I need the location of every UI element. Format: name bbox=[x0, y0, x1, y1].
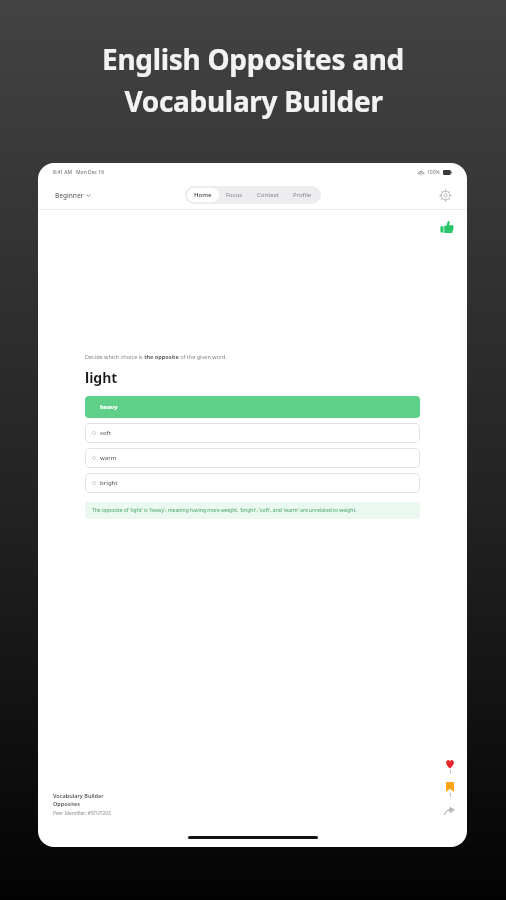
button[interactable]: warm bbox=[85, 448, 420, 468]
button[interactable]: Settings bbox=[439, 189, 452, 202]
staticText: The opposite of 'light' is 'heavy', mean… bbox=[92, 507, 357, 514]
button[interactable]: bright bbox=[85, 473, 420, 493]
staticText: Home bbox=[194, 191, 212, 199]
staticText: Peer Identifier: #STUT203 bbox=[53, 810, 111, 817]
staticText: Profile bbox=[293, 191, 312, 199]
staticText: Focus bbox=[226, 191, 243, 199]
staticText: Decide which choice is the opposite of t… bbox=[85, 353, 227, 360]
button[interactable]: Favorite bbox=[443, 757, 457, 777]
button[interactable]: Beginner bbox=[53, 189, 93, 202]
staticText: heavy bbox=[100, 403, 118, 411]
button[interactable]: Share bbox=[442, 804, 457, 819]
staticText: 1 bbox=[449, 792, 452, 798]
button[interactable]: Home bbox=[187, 188, 219, 202]
button[interactable]: Bookmark bbox=[444, 780, 456, 800]
staticText: 100% bbox=[427, 169, 440, 176]
staticText: Vocabulary Builder bbox=[53, 792, 104, 799]
staticText: 1 bbox=[449, 769, 452, 775]
staticText: Beginner bbox=[55, 191, 84, 200]
staticText: Context bbox=[257, 191, 279, 199]
staticText: Vocabulary Builder bbox=[124, 82, 383, 120]
button[interactable]: Context bbox=[250, 188, 286, 202]
staticText: 8:41 AM Mon Dec 16 bbox=[53, 169, 105, 176]
staticText: bright bbox=[100, 479, 118, 487]
button[interactable]: Like bbox=[438, 218, 456, 236]
button[interactable]: Profile bbox=[286, 188, 319, 202]
button[interactable]: heavy bbox=[85, 396, 420, 418]
staticText: Opposites bbox=[53, 800, 81, 807]
button[interactable]: Focus bbox=[219, 188, 250, 202]
staticText: English Opposites and bbox=[102, 40, 404, 78]
staticText: warm bbox=[100, 454, 117, 462]
staticText: light bbox=[85, 368, 118, 387]
button[interactable]: soft bbox=[85, 423, 420, 443]
staticText: soft bbox=[100, 429, 112, 437]
